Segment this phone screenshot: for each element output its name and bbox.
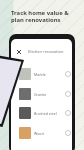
staticText: Brushed steel <box>34 111 57 116</box>
staticText: plan renovations <box>11 16 61 24</box>
button[interactable]: Granite <box>19 87 72 101</box>
staticText: Track home value & <box>11 9 69 17</box>
button[interactable]: Marble <box>19 67 72 81</box>
staticText: Granite <box>34 92 47 97</box>
button[interactable]: Wood <box>19 126 72 140</box>
button[interactable]: Close <box>15 48 23 56</box>
staticText: Kitchen renovation <box>28 49 64 54</box>
staticText: Wood <box>34 131 44 136</box>
button[interactable]: Brushed steel <box>19 106 72 120</box>
staticText: Marble <box>34 72 46 77</box>
